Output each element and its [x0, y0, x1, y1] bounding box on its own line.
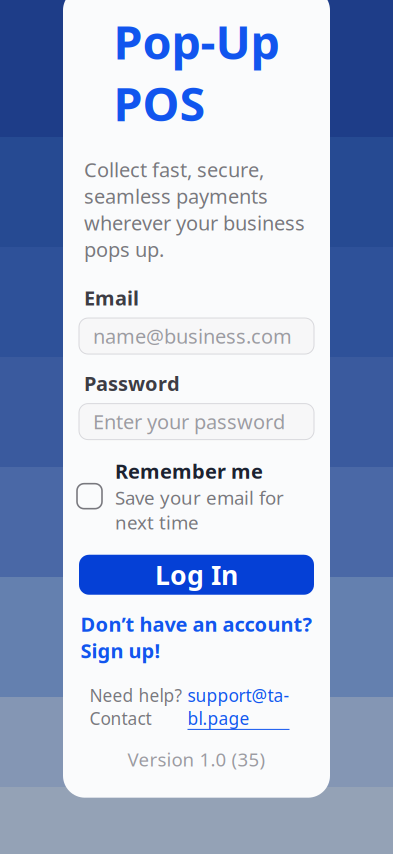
staticText: Log In: [155, 557, 238, 592]
staticText: Don’t have an account? Sign up!: [80, 611, 312, 664]
staticText: support@tabl.page: [187, 684, 289, 730]
staticText: Email: [84, 284, 139, 311]
staticText: Version 1.0 (35): [127, 747, 265, 772]
button[interactable]: Don’t have an account? Sign up!: [80, 607, 312, 668]
staticText: Need help? Contact: [89, 684, 182, 730]
staticText: Remember me: [115, 458, 263, 484]
staticText: Password: [84, 370, 180, 397]
staticText: Pop-Up POS: [113, 10, 279, 134]
button[interactable]: Need help? Contact: [89, 684, 303, 730]
button[interactable]: Remember me: [78, 452, 314, 541]
staticText: Save your email for next time: [115, 485, 284, 535]
staticText: name@business.com: [93, 323, 292, 349]
staticText: Collect fast, secure, seamless payments …: [84, 156, 305, 262]
button[interactable]: Log In: [79, 555, 314, 595]
staticText: Enter your password: [93, 408, 285, 435]
